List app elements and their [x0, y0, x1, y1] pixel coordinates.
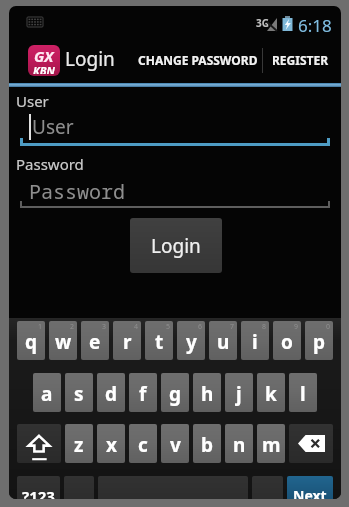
button[interactable]: h	[193, 373, 221, 412]
button[interactable]: 6	[177, 321, 205, 360]
button[interactable]: g	[161, 373, 189, 412]
button[interactable]: s	[65, 373, 93, 412]
button[interactable]: REGISTER	[263, 36, 338, 84]
staticText: z	[74, 432, 84, 458]
staticText: 6:18	[298, 14, 332, 37]
staticText: u	[217, 329, 230, 355]
button[interactable]: 3	[81, 321, 109, 360]
staticText: w	[55, 329, 72, 355]
button[interactable]: k	[257, 373, 285, 412]
button[interactable]: App icon	[28, 45, 60, 76]
staticText: Next	[293, 486, 327, 499]
staticText: KBN	[33, 63, 55, 74]
button[interactable]: x	[97, 424, 125, 463]
staticText: b	[201, 432, 214, 458]
staticText: m	[262, 432, 281, 458]
button[interactable]: 0	[305, 321, 333, 360]
staticText: 2	[70, 322, 75, 332]
button[interactable]: CHANGE PASSWORD	[129, 36, 262, 84]
button[interactable]: d	[97, 373, 125, 412]
staticText: p	[313, 329, 326, 355]
staticText: a	[41, 381, 53, 407]
button[interactable]: 9	[273, 321, 301, 360]
staticText: y	[186, 329, 197, 355]
button[interactable]: 7	[209, 321, 237, 360]
staticText: i	[252, 329, 258, 355]
button[interactable]: c	[129, 424, 157, 463]
staticText: 6	[198, 322, 203, 332]
button[interactable]: j	[225, 373, 253, 412]
button[interactable]: Login	[130, 218, 222, 273]
staticText: CHANGE PASSWORD	[138, 52, 258, 68]
staticText: q	[25, 329, 38, 355]
staticText: GX	[34, 46, 54, 66]
button[interactable]: v	[161, 424, 189, 463]
button[interactable]: a	[33, 373, 61, 412]
button[interactable]: z	[65, 424, 93, 463]
button[interactable]: m	[257, 424, 285, 463]
staticText: 3	[102, 322, 107, 332]
staticText: l	[300, 381, 306, 407]
button[interactable]: l	[289, 373, 317, 412]
button[interactable]: Delete	[289, 424, 333, 463]
staticText: x	[106, 432, 117, 458]
staticText: 4	[134, 322, 139, 332]
staticText: s	[74, 381, 84, 407]
staticText: 8	[262, 322, 267, 332]
staticText: t	[155, 329, 164, 355]
staticText: d	[105, 381, 118, 407]
staticText: o	[281, 329, 293, 355]
staticText: 7	[230, 322, 235, 332]
staticText: User	[32, 114, 74, 140]
button[interactable]: Next	[287, 476, 333, 499]
button[interactable]: f	[129, 373, 157, 412]
staticText: Password	[29, 178, 125, 205]
button[interactable]: 8	[241, 321, 269, 360]
staticText: 3G	[256, 16, 269, 30]
staticText: 1	[38, 322, 43, 332]
staticText: Login	[65, 46, 115, 72]
button[interactable]: 1	[17, 321, 45, 360]
staticText: n	[233, 432, 246, 458]
button[interactable]: n	[225, 424, 253, 463]
staticText: Login	[151, 233, 201, 259]
staticText: j	[236, 381, 242, 407]
staticText: 5	[166, 322, 171, 332]
button[interactable]: 2	[49, 321, 77, 360]
button[interactable]: Shift	[17, 424, 61, 463]
button[interactable]: 4	[113, 321, 141, 360]
staticText: User	[16, 91, 49, 111]
staticText: g	[169, 381, 182, 407]
staticText: r	[123, 329, 132, 355]
staticText: k	[265, 381, 277, 407]
staticText: c	[138, 432, 148, 458]
staticText: v	[170, 432, 181, 458]
staticText: REGISTER	[272, 52, 329, 68]
button[interactable]: 5	[145, 321, 173, 360]
staticText: Password	[16, 154, 84, 174]
staticText: f	[139, 381, 147, 407]
staticText: h	[201, 381, 214, 407]
staticText: ?123	[22, 486, 55, 499]
staticText: e	[89, 329, 101, 355]
staticText: 0	[326, 322, 331, 332]
staticText: 9	[294, 322, 299, 332]
button[interactable]: ?123	[17, 476, 60, 499]
button[interactable]: b	[193, 424, 221, 463]
